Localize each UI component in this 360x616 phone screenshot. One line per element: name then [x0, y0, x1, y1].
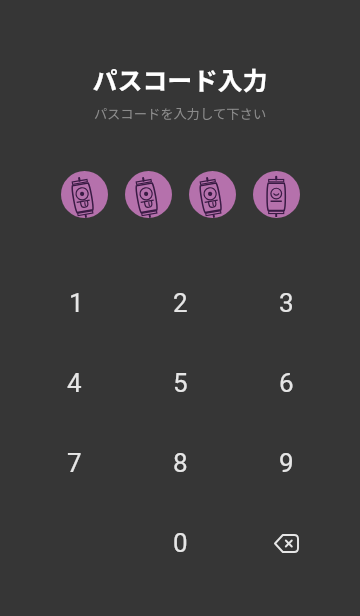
staticText: 8 [173, 448, 188, 478]
staticText: パスコードを入力して下さい [0, 104, 360, 123]
button[interactable]: 5 [127, 343, 233, 423]
other: Delete [266, 523, 306, 563]
button[interactable]: 4 [21, 343, 127, 423]
staticText: 5 [173, 368, 188, 398]
staticText: 0 [173, 528, 188, 558]
button[interactable]: 3 [233, 263, 339, 343]
button[interactable]: 2 [127, 263, 233, 343]
button[interactable]: Delete [233, 503, 339, 583]
staticText: パスコード入力 [0, 61, 360, 97]
staticText: 1 [69, 288, 84, 318]
staticText: 6 [279, 368, 294, 398]
button[interactable]: 8 [127, 423, 233, 503]
button[interactable]: 0 [127, 503, 233, 583]
button[interactable]: 9 [233, 423, 339, 503]
staticText: 7 [67, 448, 82, 478]
staticText: 3 [279, 288, 294, 318]
button[interactable]: 7 [21, 423, 127, 503]
staticText: 4 [67, 368, 82, 398]
button[interactable]: 1 [21, 263, 127, 343]
staticText: 2 [173, 288, 188, 318]
staticText: 9 [279, 448, 294, 478]
button[interactable]: 6 [233, 343, 339, 423]
